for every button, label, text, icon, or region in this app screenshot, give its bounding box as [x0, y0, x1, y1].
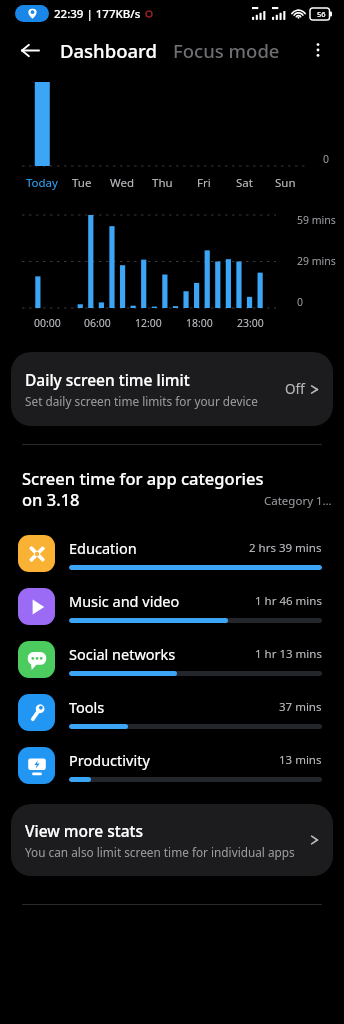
staticText: Dashboard [60, 38, 157, 63]
button[interactable]: Daily screen time limit [11, 352, 333, 426]
button[interactable]: Wed [102, 175, 142, 191]
button[interactable]: Education [0, 527, 344, 580]
staticText: 12:00 [135, 316, 162, 330]
staticText: 0 [297, 295, 304, 309]
staticText: Fri [197, 175, 211, 191]
button[interactable]: Today [22, 175, 62, 191]
staticText: Social networks [69, 644, 176, 664]
staticText: 22:39 | 177KB/s [54, 6, 141, 22]
staticText: 56 [317, 9, 326, 19]
staticText: Screen time for app categories on 3.18 [22, 467, 264, 511]
button[interactable]: Sat [224, 175, 265, 191]
staticText: 29 mins [297, 254, 336, 268]
staticText: 06:00 [84, 316, 111, 330]
staticText: Productivity [69, 750, 150, 770]
button[interactable]: More options [298, 30, 338, 70]
button[interactable]: Focus mode [173, 38, 280, 63]
staticText: 0 [323, 152, 330, 166]
staticText: Wed [110, 175, 135, 191]
button[interactable]: Category 1… [264, 493, 332, 509]
staticText: Tools [69, 697, 105, 717]
staticText: Sun [275, 175, 296, 191]
button[interactable]: Productivity [0, 739, 344, 792]
staticText: Music and video [69, 591, 180, 611]
button[interactable]: Social networks [0, 633, 344, 686]
staticText: 13 mins [279, 752, 322, 768]
staticText: 00:00 [34, 316, 61, 330]
button[interactable]: Sun [265, 175, 306, 191]
staticText: 59 mins [297, 213, 336, 227]
staticText: Today [26, 175, 58, 191]
staticText: 1 hr 46 mins [255, 593, 322, 609]
staticText: Set daily screen time limits for your de… [25, 393, 258, 409]
button[interactable]: Back [10, 30, 50, 70]
staticText: Thu [152, 175, 173, 191]
button[interactable]: View more stats [11, 804, 333, 876]
staticText: 2 hrs 39 mins [249, 540, 322, 556]
staticText: Tue [72, 175, 92, 191]
staticText: Education [69, 538, 137, 558]
button[interactable]: Fri [183, 175, 224, 191]
staticText: 1 hr 13 mins [255, 646, 322, 662]
button[interactable]: Tools [0, 686, 344, 739]
staticText: 18:00 [186, 316, 213, 330]
staticText: Focus mode [173, 38, 280, 63]
button[interactable]: Tue [62, 175, 102, 191]
button[interactable]: Music and video [0, 580, 344, 633]
staticText: 23:00 [237, 316, 264, 330]
staticText: Sat [236, 175, 253, 191]
staticText: Daily screen time limit [25, 369, 190, 390]
button[interactable]: Thu [142, 175, 183, 191]
staticText: 37 mins [279, 699, 322, 715]
staticText: Category 1… [264, 493, 332, 509]
staticText: You can also limit screen time for indiv… [25, 844, 295, 860]
staticText: Off [285, 380, 305, 398]
staticText: View more stats [25, 820, 143, 841]
button[interactable]: Dashboard [60, 38, 157, 63]
